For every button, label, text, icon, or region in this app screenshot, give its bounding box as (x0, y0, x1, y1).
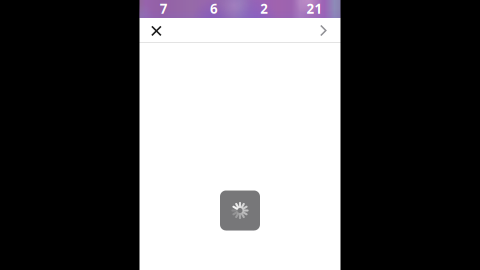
staticText: 21 (306, 0, 322, 17)
staticText: 7 (160, 0, 168, 17)
button[interactable]: Next (314, 18, 338, 42)
button[interactable]: Close (144, 18, 168, 42)
staticText: 6 (210, 0, 218, 17)
staticText: 2 (260, 0, 268, 17)
